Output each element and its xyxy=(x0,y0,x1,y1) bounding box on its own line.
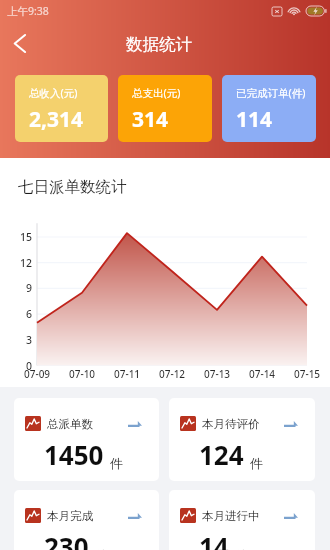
staticText: 七日派单数统计 xyxy=(18,177,127,197)
staticText: 6 xyxy=(26,307,33,321)
staticText: 12 xyxy=(20,256,33,270)
button[interactable]: 总派单数 xyxy=(14,398,159,481)
staticText: 07-09 xyxy=(24,367,51,381)
button[interactable]: 本月进行中 xyxy=(169,490,315,550)
staticText: 07-13 xyxy=(204,367,231,381)
staticText: 3 xyxy=(26,333,33,347)
staticText: 本月完成 xyxy=(47,509,93,523)
staticText: 07-14 xyxy=(249,367,276,381)
staticText: 本月待评价 xyxy=(202,417,260,431)
staticText: 9 xyxy=(26,281,33,295)
button[interactable]: 总收入(元) xyxy=(15,75,108,142)
staticText: 件 xyxy=(95,547,108,550)
staticText: 件 xyxy=(250,455,263,471)
staticText: 314 xyxy=(132,105,169,134)
staticText: 124 xyxy=(199,437,244,472)
staticText: 总支出(元) xyxy=(132,86,181,100)
staticText: 总派单数 xyxy=(47,417,93,431)
button[interactable]: 总支出(元) xyxy=(118,75,212,142)
staticText: 15 xyxy=(20,230,33,244)
button[interactable]: 本月待评价 xyxy=(169,398,315,481)
staticText: 本月进行中 xyxy=(202,509,260,523)
staticText: 2,314 xyxy=(29,105,84,134)
staticText: 数据统计 xyxy=(126,34,192,55)
staticText: 07-10 xyxy=(69,367,96,381)
staticText: 0 xyxy=(26,359,33,373)
button[interactable]: 已完成订单(件) xyxy=(222,75,316,142)
staticText: 230 xyxy=(44,529,89,550)
staticText: 已完成订单(件) xyxy=(236,86,306,100)
staticText: 07-11 xyxy=(114,367,141,381)
staticText: 1450 xyxy=(44,437,104,472)
staticText: 总收入(元) xyxy=(29,86,78,100)
staticText: 件 xyxy=(235,547,248,550)
button[interactable]: 本月完成 xyxy=(14,490,159,550)
staticText: 14 xyxy=(199,529,229,550)
button[interactable]: Back xyxy=(0,21,39,65)
staticText: 114 xyxy=(236,105,273,134)
staticText: 件 xyxy=(110,455,123,471)
staticText: 上午9:38 xyxy=(7,4,49,18)
staticText: 07-12 xyxy=(159,367,186,381)
staticText: 07-15 xyxy=(294,367,321,381)
